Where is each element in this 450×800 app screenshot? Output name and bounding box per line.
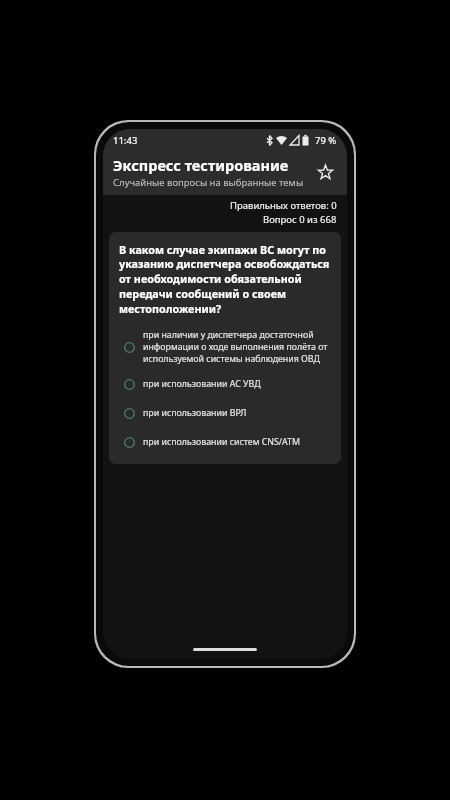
button[interactable]: при использовании АС УВД (119, 374, 331, 394)
button[interactable]: Добавить в избранное (311, 158, 339, 186)
staticText: В каком случае экипажи ВС могут по указа… (119, 242, 331, 317)
staticText: Экспресс тестирование (113, 155, 289, 175)
staticText: при использовании ВРЛ (143, 407, 247, 419)
staticText: Случайные вопросы на выбранные темы (113, 176, 304, 189)
staticText: при наличии у диспетчера достаточной инф… (143, 329, 331, 365)
staticText: Вопрос 0 из 668 (263, 213, 337, 226)
staticText: 79 % (315, 134, 337, 147)
staticText: Правильных ответов: 0 (230, 199, 337, 212)
staticText: при использовании систем CNS/ATM (143, 436, 300, 448)
staticText: 11:43 (113, 134, 138, 147)
button[interactable]: при наличии у диспетчера достаточной инф… (119, 329, 331, 365)
staticText: при использовании АС УВД (143, 378, 261, 390)
button[interactable]: при использовании ВРЛ (119, 403, 331, 423)
button[interactable]: при использовании систем CNS/ATM (119, 432, 331, 452)
